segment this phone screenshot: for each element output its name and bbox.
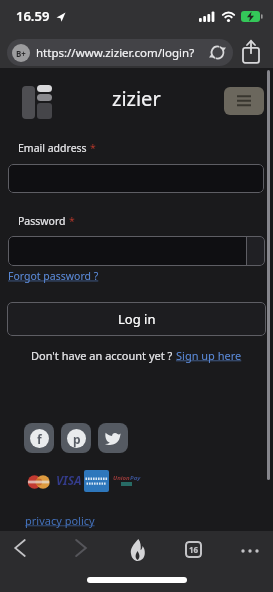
staticText: f (37, 431, 42, 447)
button[interactable] (98, 423, 128, 453)
staticText: Don't have an account yet ? (31, 348, 176, 363)
button[interactable] (8, 164, 264, 193)
button[interactable] (224, 87, 264, 115)
button[interactable] (75, 539, 87, 557)
button[interactable]: Forgot password ? (8, 269, 99, 283)
button[interactable]: f (24, 423, 54, 453)
staticText: B+ (16, 48, 26, 59)
staticText: https://www.zizier.com/login? (36, 45, 195, 61)
button[interactable]: p (61, 423, 91, 453)
staticText: VISA (56, 472, 82, 488)
staticText: Union (113, 474, 130, 482)
button[interactable]: privacy policy (25, 513, 95, 528)
staticText: Log in (118, 310, 156, 328)
staticText: Email address (18, 141, 90, 155)
staticText: * (90, 141, 96, 155)
staticText: Pay (130, 474, 141, 482)
button[interactable] (241, 40, 261, 64)
button[interactable]: B+ (7, 39, 233, 66)
staticText: * (69, 214, 75, 228)
button[interactable] (240, 546, 260, 556)
button[interactable] (14, 539, 26, 557)
button[interactable] (210, 45, 225, 60)
staticText: p (73, 431, 81, 447)
button[interactable]: 16 (185, 541, 202, 558)
staticText: 16 (189, 544, 199, 555)
staticText: zizier (112, 85, 161, 112)
staticText: 16.59 (16, 7, 50, 25)
button[interactable] (129, 539, 146, 561)
button[interactable] (8, 236, 265, 266)
button[interactable]: Log in (7, 302, 266, 336)
staticText: Password (18, 214, 69, 228)
button[interactable]: Sign up here (176, 348, 242, 363)
